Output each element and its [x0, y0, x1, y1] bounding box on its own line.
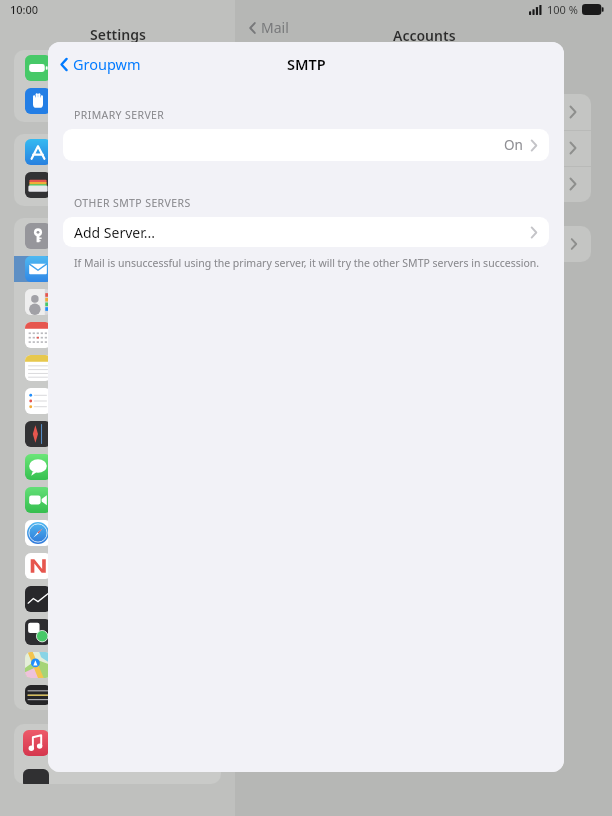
button[interactable]: On — [63, 129, 549, 161]
button[interactable]: Groupwm — [48, 48, 151, 80]
staticText: Groupwm — [73, 54, 141, 74]
staticText: If Mail is unsuccessful using the primar… — [74, 256, 540, 270]
staticText: Settings — [90, 25, 146, 44]
staticText: 10:00 — [10, 2, 39, 17]
staticText: 100 % — [547, 2, 578, 17]
staticText: OTHER SMTP SERVERS — [74, 196, 191, 210]
staticText: Mail — [261, 18, 289, 37]
staticText: Accounts — [393, 26, 456, 45]
staticText: Add Server... — [74, 223, 155, 242]
staticText: SMTP — [287, 54, 326, 74]
staticText: On — [504, 136, 523, 154]
button[interactable]: Add Server... — [63, 217, 549, 247]
staticText: PRIMARY SERVER — [74, 108, 165, 122]
